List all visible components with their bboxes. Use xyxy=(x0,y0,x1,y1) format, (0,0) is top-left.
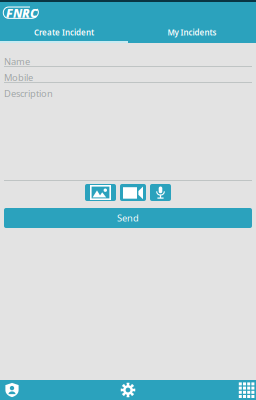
staticText: FNRC xyxy=(6,5,38,21)
staticText: Send xyxy=(117,212,139,224)
button[interactable]: My Incidents xyxy=(128,24,256,43)
button[interactable]: More xyxy=(206,380,256,400)
button[interactable]: Settings xyxy=(108,380,148,400)
staticText: Mobile xyxy=(4,71,33,84)
button[interactable]: Record video xyxy=(120,184,146,201)
button[interactable]: Create Incident xyxy=(0,24,128,43)
button[interactable]: Send xyxy=(4,208,252,228)
button[interactable]: Record audio xyxy=(150,184,171,201)
button[interactable]: Attach photo xyxy=(85,184,116,201)
button[interactable]: FNRC home xyxy=(2,6,46,20)
button[interactable]: Emergency xyxy=(0,380,50,400)
staticText: Description xyxy=(4,87,53,100)
staticText: Name xyxy=(4,55,30,68)
staticText: My Incidents xyxy=(167,27,216,38)
staticText: Create Incident xyxy=(34,27,94,38)
